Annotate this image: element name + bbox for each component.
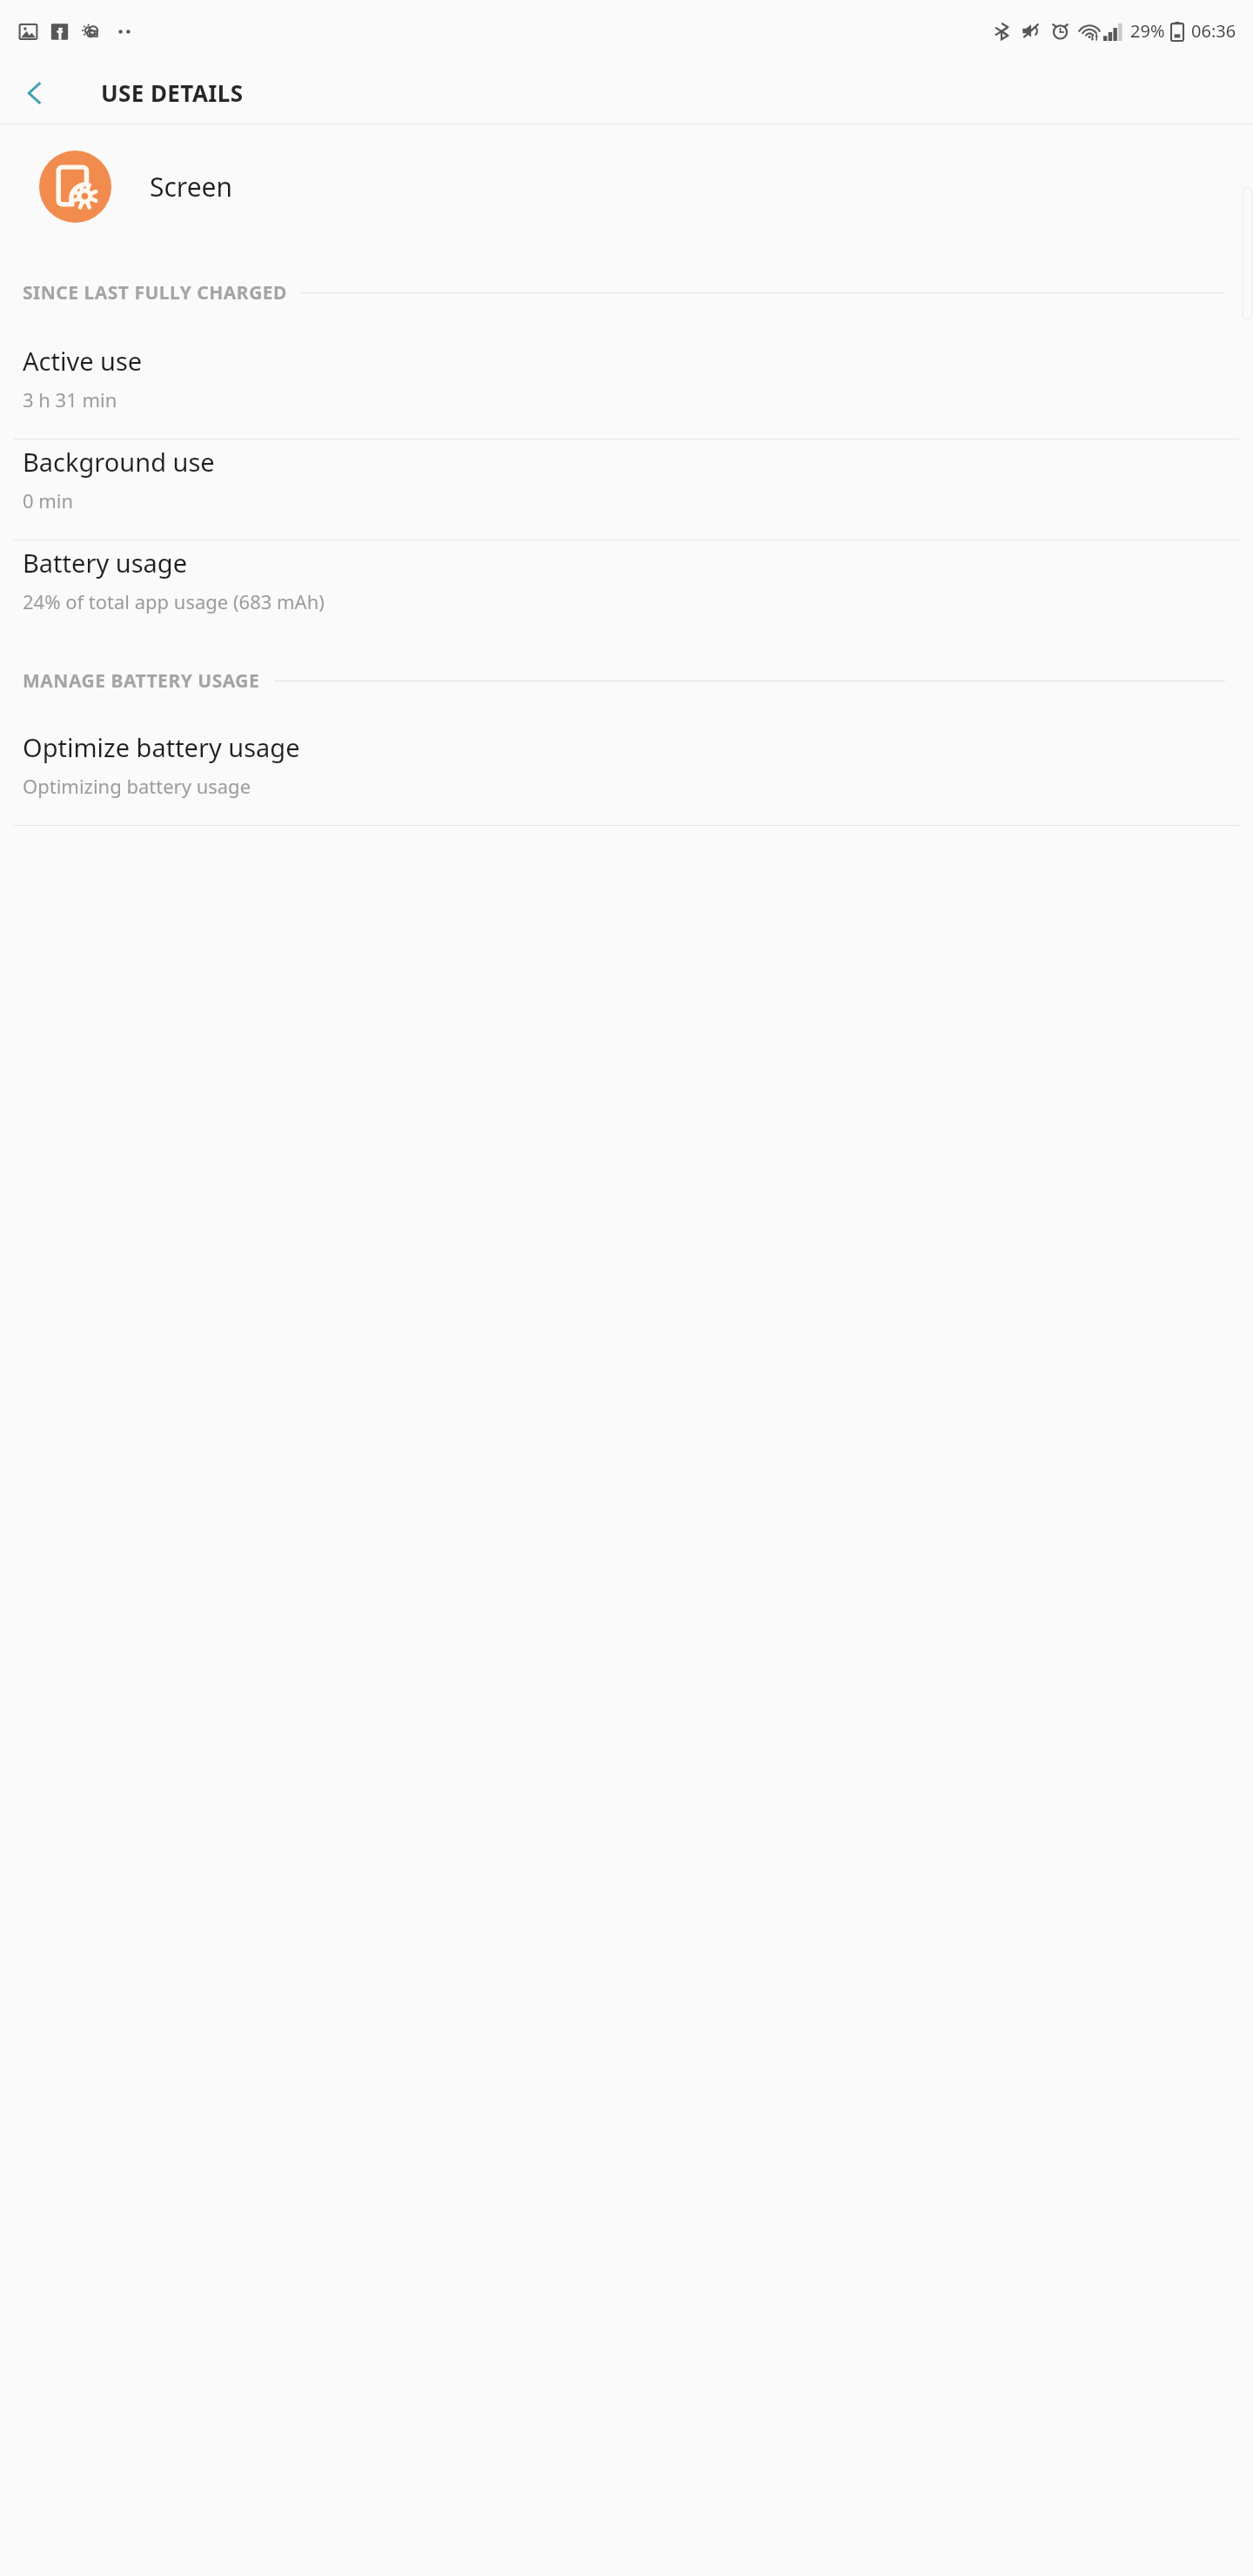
- staticText: Screen: [150, 169, 233, 205]
- staticText: 0 min: [23, 487, 74, 513]
- staticText: Active use: [23, 344, 143, 378]
- staticText: Optimize battery usage: [23, 730, 300, 764]
- staticText: 3 h 31 min: [23, 386, 117, 413]
- staticText: USE DETAILS: [101, 77, 244, 108]
- staticText: Battery usage: [23, 546, 187, 580]
- button[interactable]: Screen: [0, 124, 1253, 248]
- button[interactable]: Battery usage: [0, 540, 1253, 641]
- staticText: Optimizing battery usage: [23, 773, 251, 799]
- button[interactable]: Back: [12, 70, 57, 116]
- button[interactable]: Optimize battery usage: [0, 725, 1253, 825]
- button[interactable]: Background use: [0, 439, 1253, 540]
- button[interactable]: Active use: [0, 339, 1253, 439]
- staticText: 06:36: [1191, 19, 1236, 43]
- staticText: Background use: [23, 445, 215, 479]
- staticText: 24% of total app usage (683 mAh): [23, 588, 325, 614]
- staticText: 29%: [1130, 19, 1165, 43]
- staticText: SINCE LAST FULLY CHARGED: [23, 280, 287, 305]
- staticText: MANAGE BATTERY USAGE: [23, 668, 260, 694]
